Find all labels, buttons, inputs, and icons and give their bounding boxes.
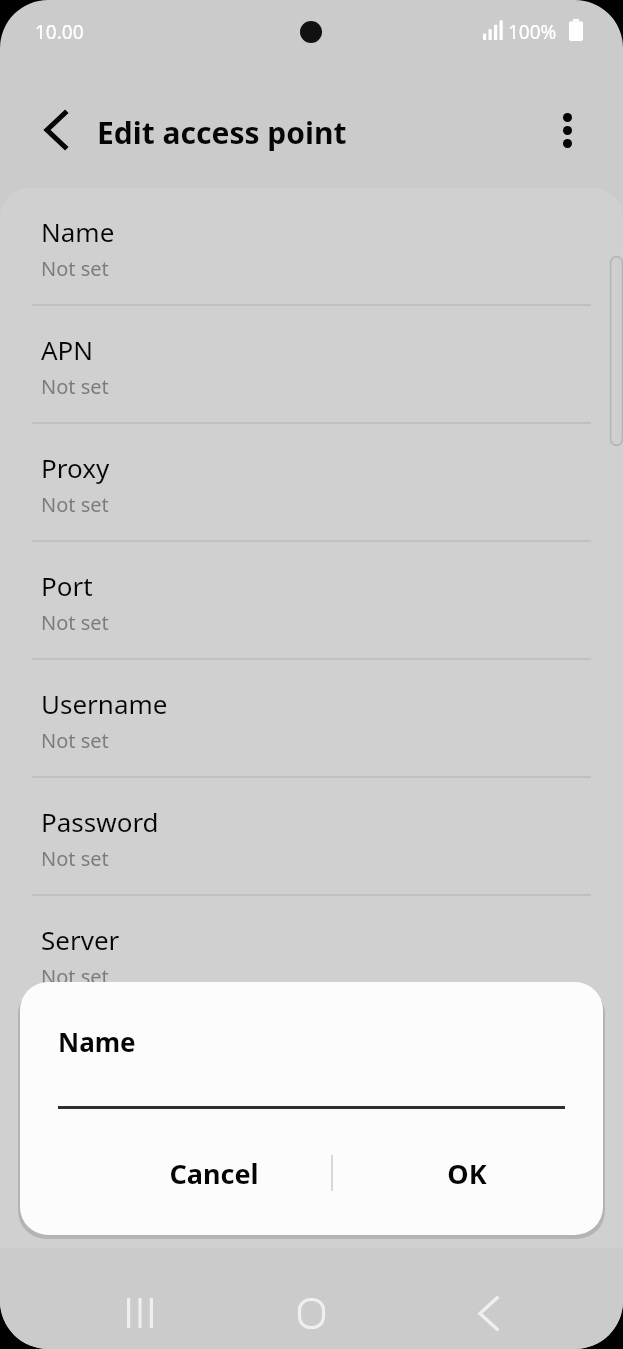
button[interactable]: Username: [0, 660, 623, 778]
staticText: Not set: [41, 373, 109, 400]
staticText: Name: [58, 1024, 136, 1059]
staticText: Username: [41, 686, 168, 721]
staticText: 10.00: [35, 19, 84, 45]
staticText: Not set: [41, 845, 109, 872]
button[interactable]: More options: [537, 100, 597, 160]
staticText: Port: [41, 568, 93, 603]
staticText: Cancel: [169, 1155, 259, 1192]
staticText: Not set: [41, 609, 109, 636]
staticText: OK: [447, 1155, 487, 1192]
button[interactable]: Recent apps: [104, 1277, 176, 1349]
button[interactable]: Back: [452, 1277, 524, 1349]
staticText: Password: [41, 804, 159, 839]
staticText: Not set: [41, 255, 109, 282]
button[interactable]: APN: [0, 306, 623, 424]
staticText: Edit access point: [97, 112, 347, 153]
staticText: MMSC: [41, 1040, 119, 1075]
button[interactable]: Password: [0, 778, 623, 896]
button[interactable]: Home: [275, 1277, 347, 1349]
staticText: Not set: [41, 1081, 109, 1108]
button[interactable]: MMSC: [0, 1014, 623, 1132]
button[interactable]: OK: [343, 1138, 591, 1208]
staticText: Not set: [41, 727, 109, 754]
staticText: APN: [41, 332, 94, 367]
button[interactable]: Server: [0, 896, 623, 1014]
staticText: 100%: [508, 19, 557, 45]
staticText: Server: [41, 922, 120, 957]
button[interactable]: Proxy: [0, 424, 623, 542]
staticText: Not set: [41, 963, 109, 990]
button[interactable]: Port: [0, 542, 623, 660]
button[interactable]: Back: [26, 100, 86, 160]
button[interactable]: Cancel: [90, 1138, 338, 1208]
staticText: Not set: [41, 491, 109, 518]
staticText: Proxy: [41, 450, 110, 485]
staticText: Name: [41, 214, 115, 249]
button[interactable]: Name: [0, 188, 623, 306]
